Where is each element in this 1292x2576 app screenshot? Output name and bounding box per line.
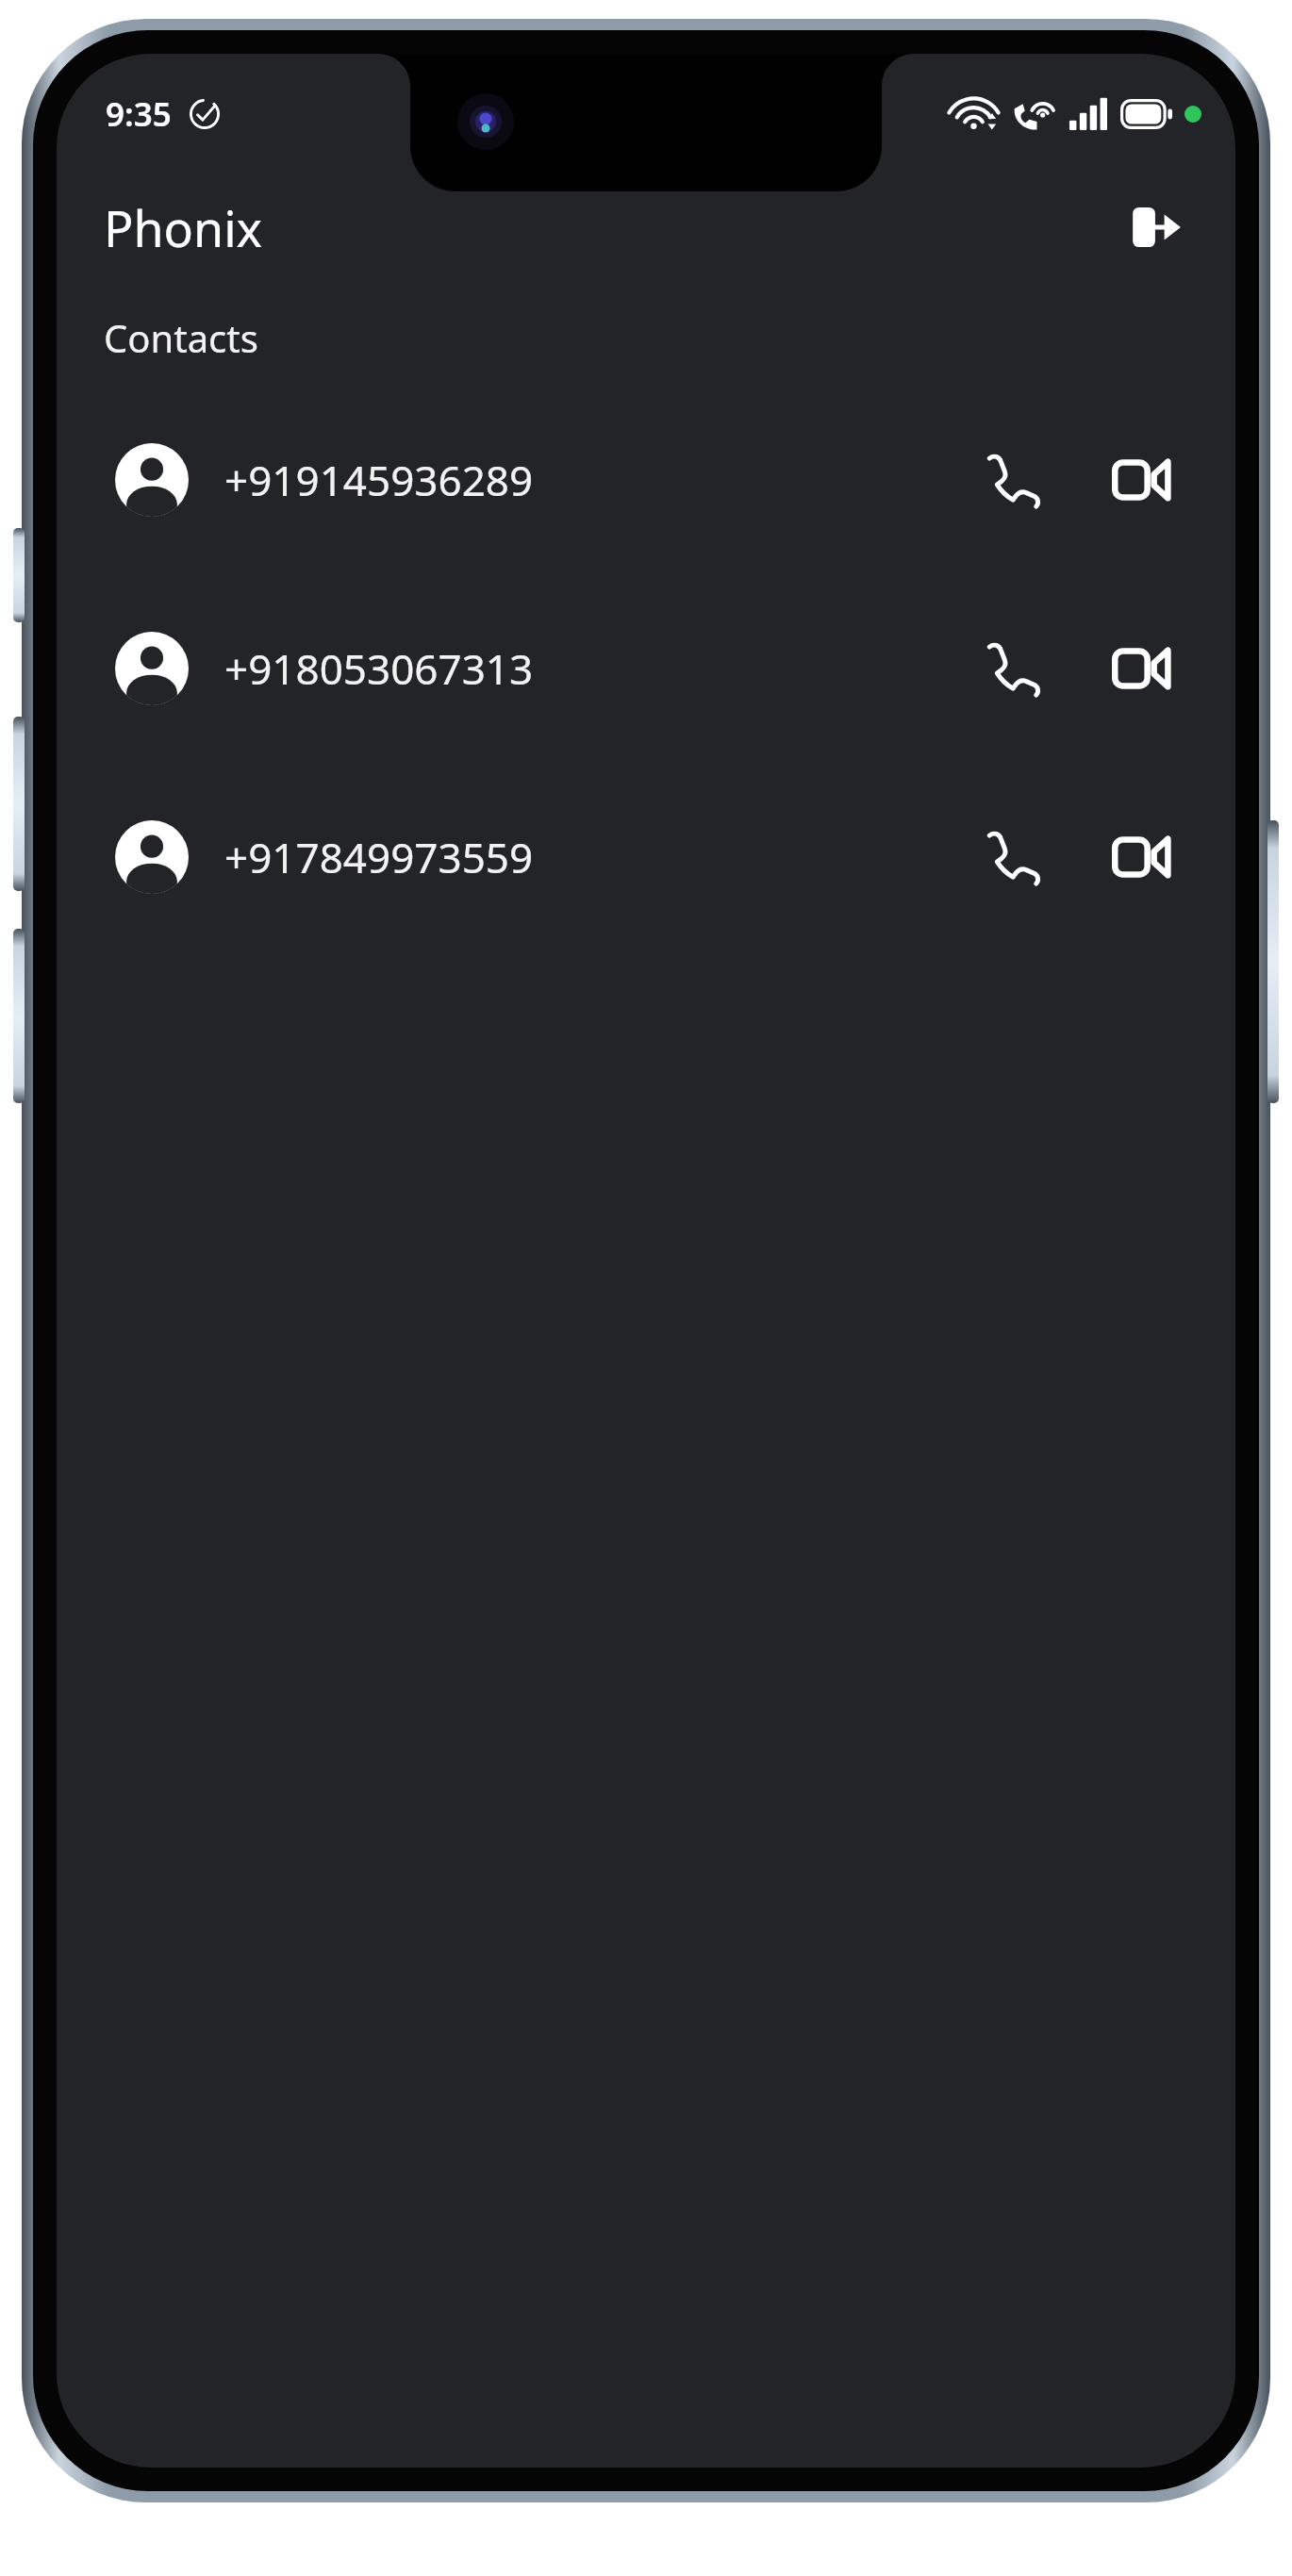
button[interactable]: +918053067313 (57, 574, 1235, 763)
staticText: +918053067313 (224, 640, 534, 697)
button[interactable]: Voice call +919145936289 (966, 438, 1049, 521)
staticText: Contacts (104, 312, 258, 363)
button[interactable]: +919145936289 (57, 386, 1235, 574)
button[interactable]: +917849973559 (57, 763, 1235, 951)
staticText: +917849973559 (224, 829, 534, 885)
button[interactable]: Voice call +918053067313 (966, 627, 1049, 710)
button[interactable]: Video call +917849973559 (1100, 816, 1183, 899)
button[interactable]: Voice call +917849973559 (966, 816, 1049, 899)
button[interactable]: Video call +919145936289 (1100, 438, 1183, 521)
button[interactable]: Logout (1122, 193, 1190, 261)
staticText: Phonix (104, 194, 263, 261)
staticText: 9:35 (106, 91, 172, 137)
staticText: +919145936289 (224, 452, 534, 508)
button[interactable]: Video call +918053067313 (1100, 627, 1183, 710)
